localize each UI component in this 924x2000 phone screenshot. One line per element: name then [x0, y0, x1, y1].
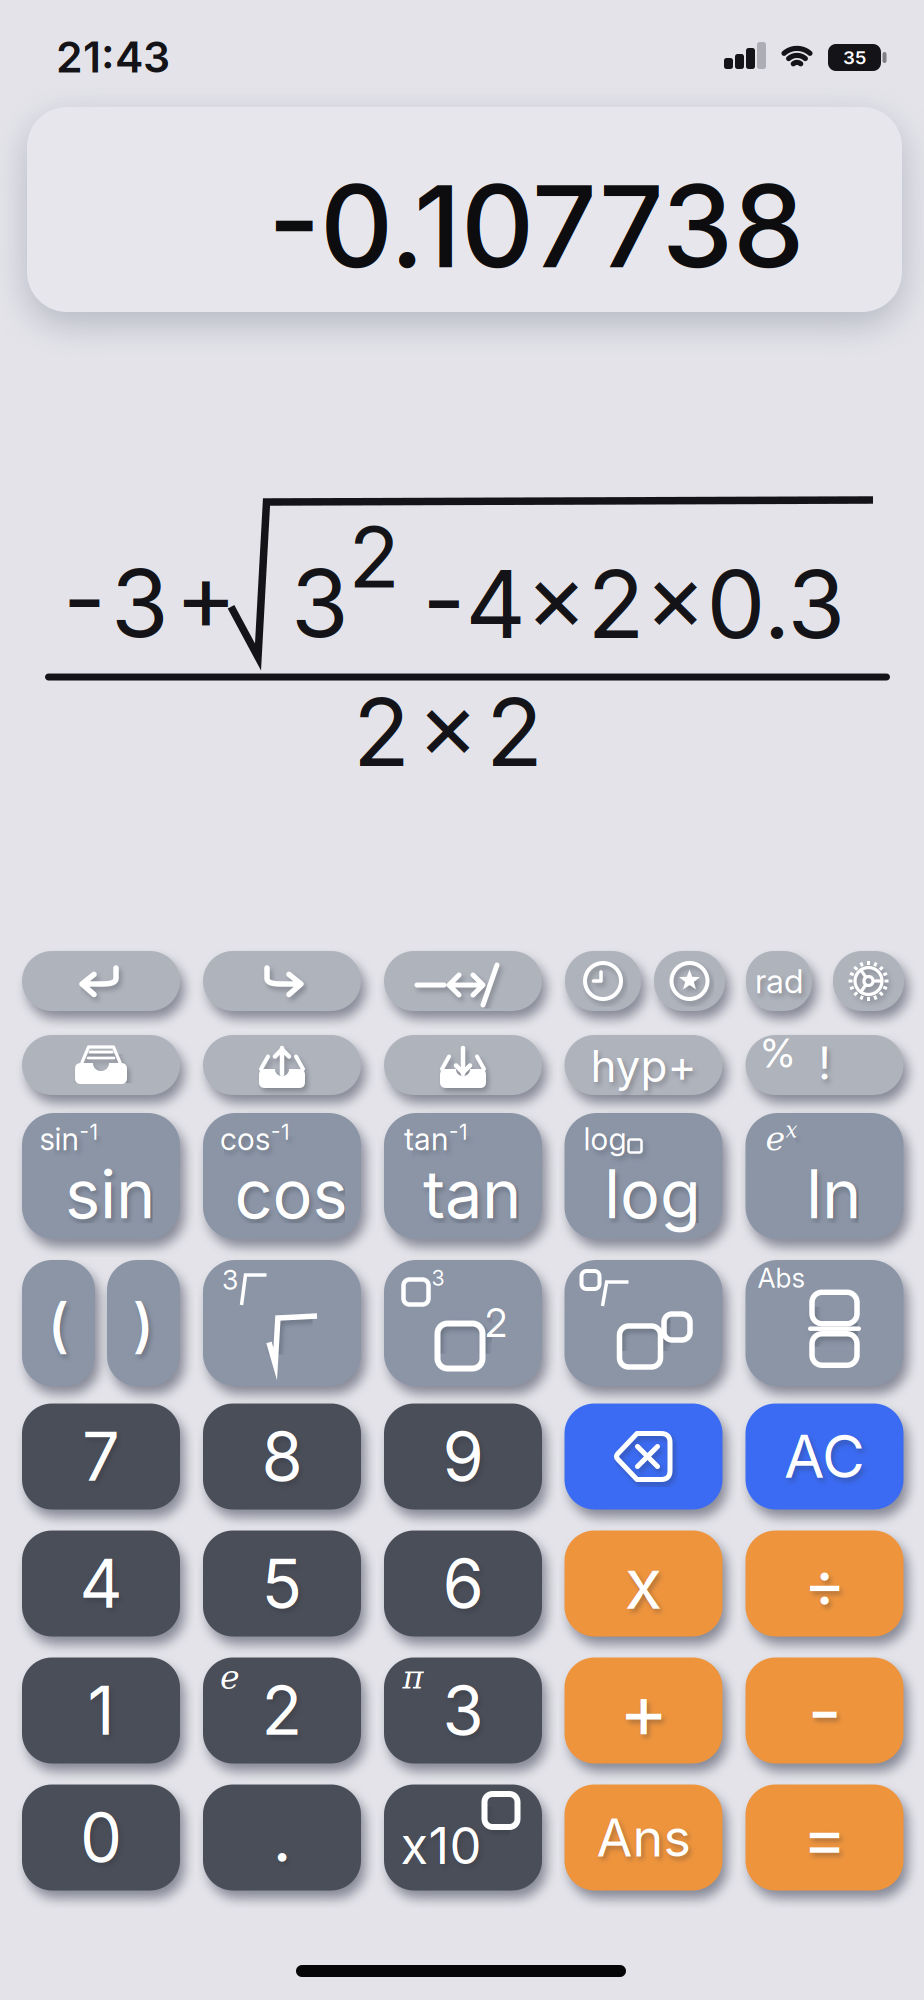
- button[interactable]: +: [564, 1657, 722, 1763]
- button[interactable]: 2: [203, 1657, 361, 1763]
- staticText: x10: [400, 1816, 481, 1875]
- button[interactable]: ln: [745, 1113, 903, 1239]
- staticText: -0.107738: [268, 159, 804, 293]
- staticText: 3: [431, 1265, 444, 1291]
- staticText: 5: [261, 1544, 302, 1623]
- button[interactable]: Settings: [833, 951, 904, 1011]
- button[interactable]: Toggle sign: [384, 951, 542, 1011]
- button[interactable]: AC: [745, 1403, 903, 1509]
- staticText: hyp+: [590, 1040, 696, 1092]
- button[interactable]: 0: [22, 1784, 180, 1890]
- staticText: -1: [271, 1119, 290, 1145]
- button[interactable]: =: [745, 1784, 903, 1890]
- staticText: 3: [442, 1671, 483, 1750]
- button[interactable]: Undo: [22, 951, 180, 1011]
- button[interactable]: Root: [203, 1260, 361, 1386]
- button[interactable]: (: [22, 1260, 95, 1386]
- staticText: 2: [348, 507, 399, 607]
- staticText: =: [802, 1798, 846, 1877]
- button[interactable]: 3: [384, 1260, 542, 1386]
- staticText: !: [818, 1036, 831, 1090]
- staticText: log: [604, 1155, 701, 1233]
- staticText: sin: [39, 1121, 78, 1157]
- staticText: ): [132, 1290, 154, 1360]
- button[interactable]: History: [565, 951, 641, 1011]
- button[interactable]: %: [745, 1035, 903, 1095]
- staticText: 2x2: [353, 677, 543, 787]
- button[interactable]: hyp+: [564, 1035, 722, 1095]
- button[interactable]: 1: [22, 1657, 180, 1763]
- staticText: +: [619, 1666, 668, 1755]
- staticText: e: [765, 1120, 785, 1158]
- staticText: 1: [87, 1671, 114, 1750]
- button[interactable]: Power: [564, 1260, 722, 1386]
- button[interactable]: ÷: [745, 1530, 903, 1636]
- staticText: 9: [442, 1417, 483, 1496]
- button[interactable]: Import: [384, 1035, 542, 1095]
- button[interactable]: 6: [384, 1530, 542, 1636]
- staticText: Ans: [596, 1807, 690, 1868]
- staticText: 21:43: [56, 32, 170, 82]
- staticText: sin: [65, 1155, 155, 1233]
- button[interactable]: x10: [384, 1784, 542, 1890]
- staticText: e: [220, 1658, 240, 1697]
- staticText: tan: [404, 1121, 448, 1157]
- button[interactable]: 3: [384, 1657, 542, 1763]
- staticText: 2: [261, 1671, 302, 1750]
- staticText: 6: [442, 1544, 483, 1623]
- staticText: x: [785, 1118, 797, 1142]
- button[interactable]: 9: [384, 1403, 542, 1509]
- staticText: tan: [423, 1155, 521, 1233]
- staticText: 4: [79, 1544, 122, 1623]
- staticText: ÷: [803, 1546, 845, 1621]
- staticText: x: [624, 1543, 662, 1624]
- staticText: -: [807, 1666, 841, 1755]
- staticText: -4x2x0.3: [422, 549, 845, 659]
- staticText: AC: [784, 1422, 865, 1491]
- button[interactable]: Ans: [564, 1784, 722, 1890]
- button[interactable]: Export: [203, 1035, 361, 1095]
- staticText: cos: [234, 1155, 347, 1233]
- staticText: 2: [485, 1300, 507, 1346]
- button[interactable]: Redo: [203, 951, 361, 1011]
- staticText: log: [583, 1121, 626, 1157]
- staticText: -3+: [63, 548, 237, 658]
- button[interactable]: 7: [22, 1403, 180, 1509]
- staticText: %: [760, 1029, 794, 1077]
- staticText: 35: [843, 46, 866, 68]
- staticText: 7: [82, 1417, 120, 1496]
- button[interactable]: tan: [384, 1113, 542, 1239]
- button[interactable]: Abs: [745, 1260, 903, 1386]
- staticText: -1: [79, 1119, 98, 1145]
- staticText: 8: [261, 1417, 302, 1496]
- staticText: cos: [220, 1121, 270, 1157]
- staticText: 3: [222, 1264, 238, 1296]
- button[interactable]: 5: [203, 1530, 361, 1636]
- button[interactable]: Favorites: [654, 951, 725, 1011]
- button[interactable]: Saved expressions: [22, 1035, 180, 1095]
- button[interactable]: 4: [22, 1530, 180, 1636]
- staticText: 3: [291, 548, 349, 658]
- staticText: (: [47, 1290, 69, 1360]
- button[interactable]: -: [745, 1657, 903, 1763]
- button[interactable]: 8: [203, 1403, 361, 1509]
- button[interactable]: .: [203, 1784, 361, 1890]
- button[interactable]: x: [564, 1530, 722, 1636]
- staticText: rad: [755, 961, 803, 1001]
- staticText: 0: [80, 1798, 122, 1877]
- staticText: .: [272, 1798, 291, 1877]
- staticText: Abs: [757, 1262, 805, 1294]
- button[interactable]: Delete: [564, 1403, 722, 1509]
- staticText: -1: [449, 1119, 468, 1145]
- button[interactable]: rad: [746, 951, 812, 1011]
- button[interactable]: sin: [22, 1113, 180, 1239]
- button[interactable]: ): [107, 1260, 180, 1386]
- staticText: π: [402, 1659, 423, 1696]
- button[interactable]: log: [564, 1113, 722, 1239]
- button[interactable]: cos: [203, 1113, 361, 1239]
- staticText: ln: [806, 1155, 861, 1233]
